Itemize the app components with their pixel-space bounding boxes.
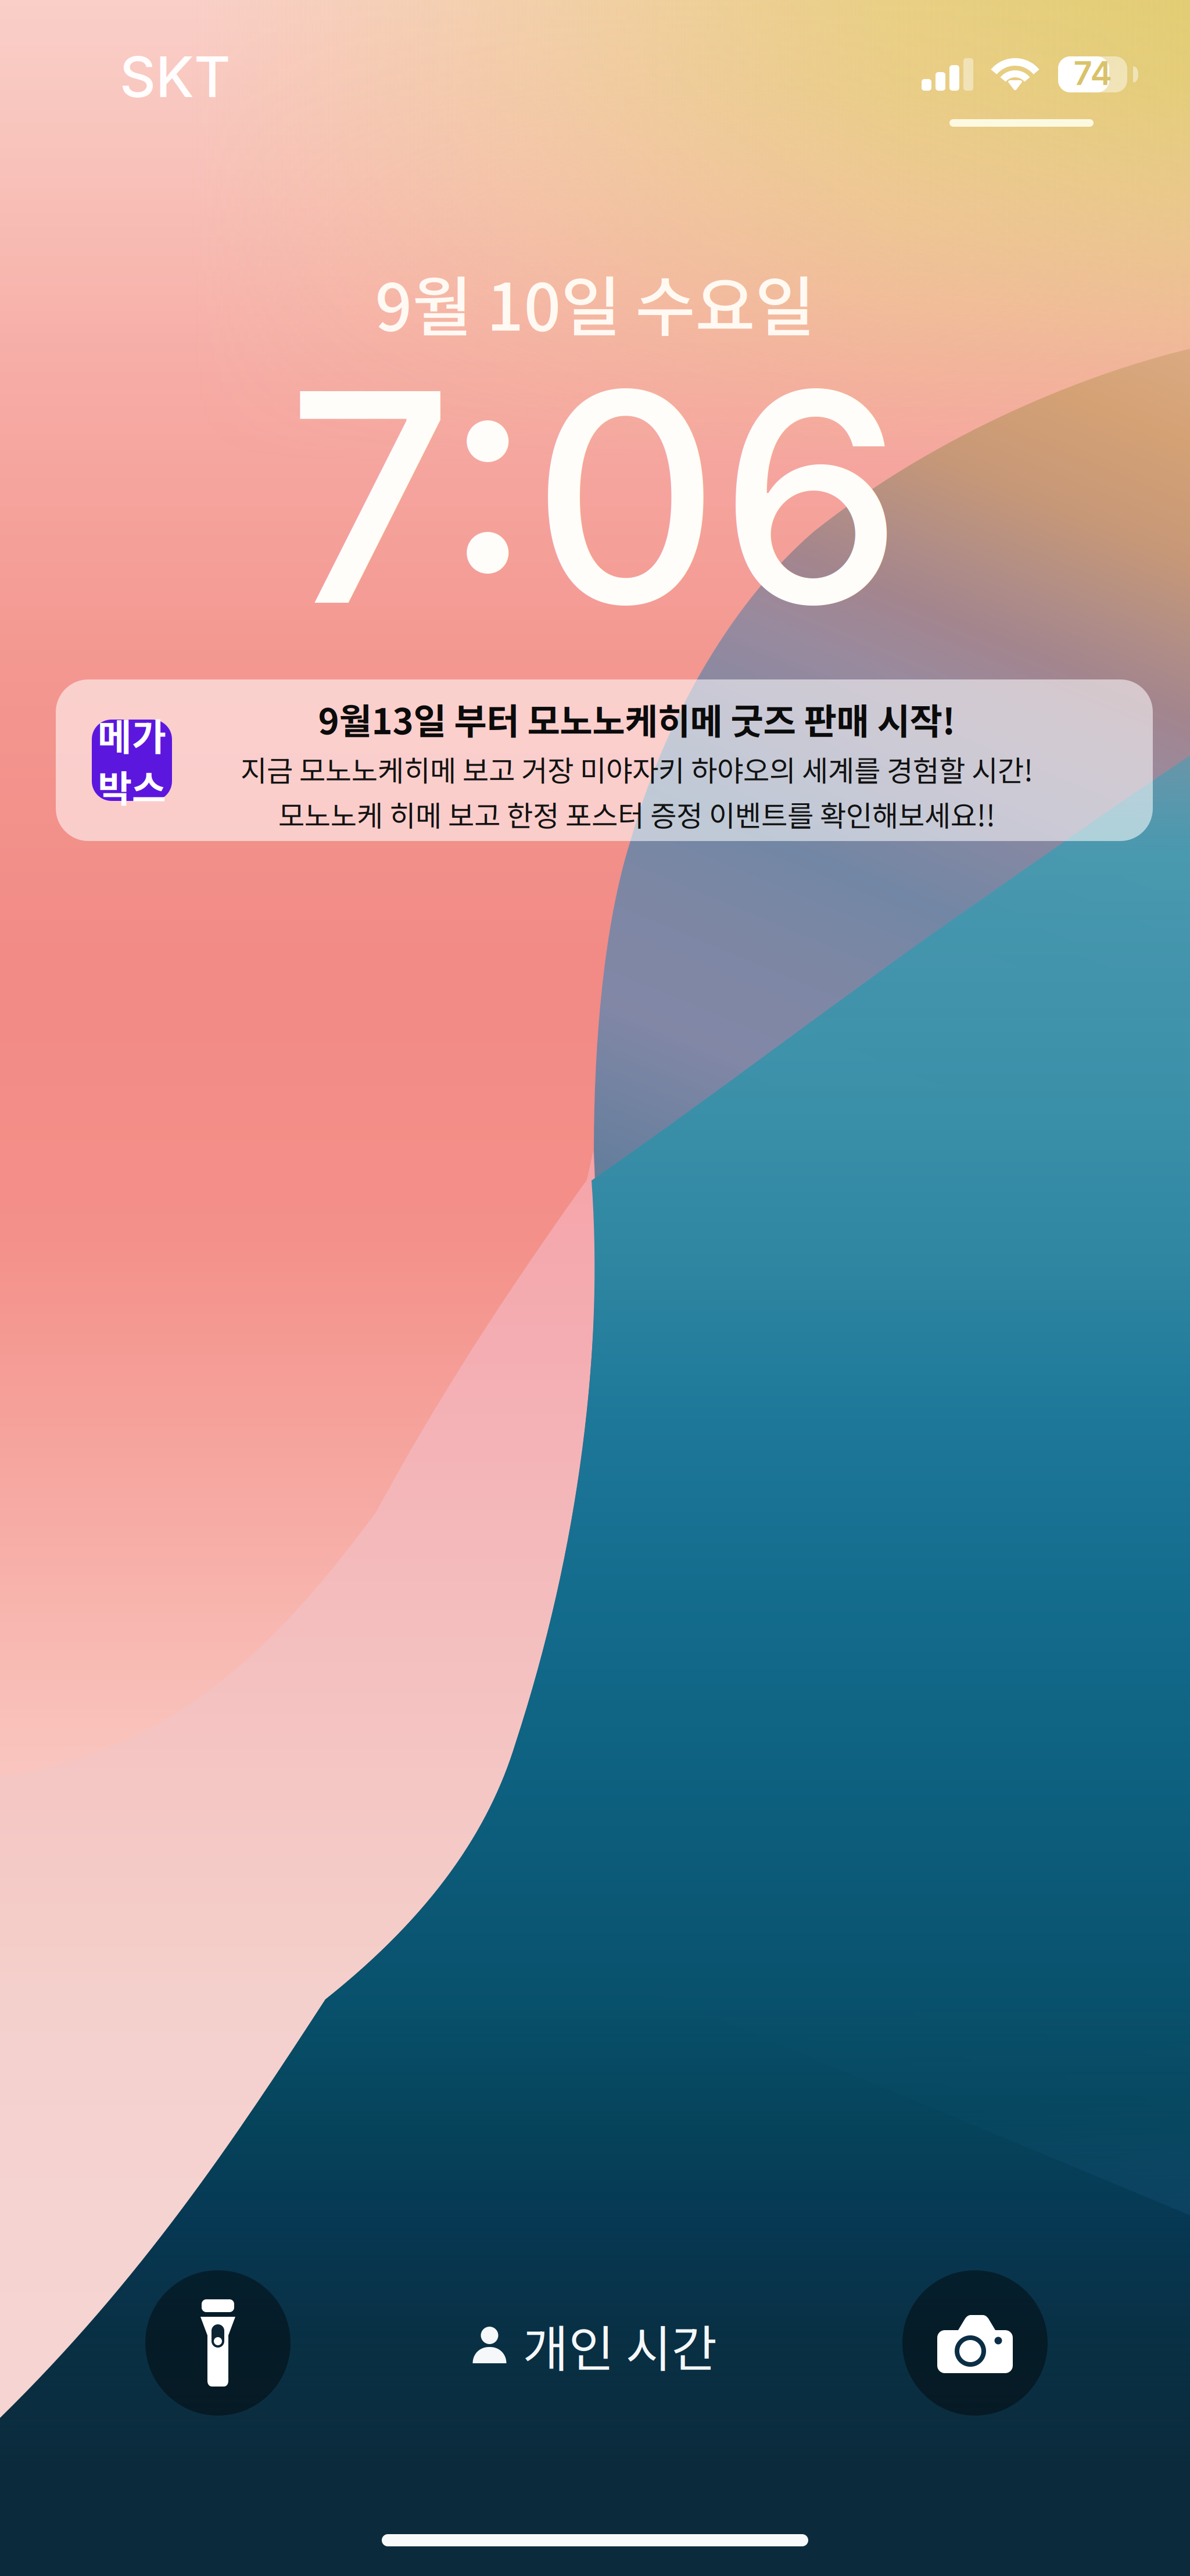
staticText: 개인 시간 bbox=[523, 2309, 717, 2381]
staticText: 74 bbox=[1073, 54, 1112, 93]
staticText: 모노노케 히메 보고 한정 포스터 증정 이벤트를 확인해보세요!! bbox=[278, 793, 995, 835]
staticText: 7:06 bbox=[287, 321, 903, 673]
staticText: 메가 bbox=[98, 708, 166, 761]
button[interactable]: Camera bbox=[902, 2270, 1048, 2416]
button[interactable]: Flashlight bbox=[145, 2270, 291, 2416]
staticText: 9월13일 부터 모노노케히메 굿즈 판매 시작! bbox=[318, 693, 956, 745]
staticText: 9월 10일 수요일 bbox=[375, 255, 815, 349]
staticText: 지금 모노노케히메 보고 거장 미야자키 하야오의 세계를 경험할 시간! bbox=[241, 748, 1033, 790]
staticText: 박스 bbox=[98, 759, 166, 813]
button[interactable]: 9월13일 부터 모노노케히메 굿즈 판매 시작! bbox=[56, 679, 1153, 841]
staticText: SKT bbox=[120, 43, 231, 110]
